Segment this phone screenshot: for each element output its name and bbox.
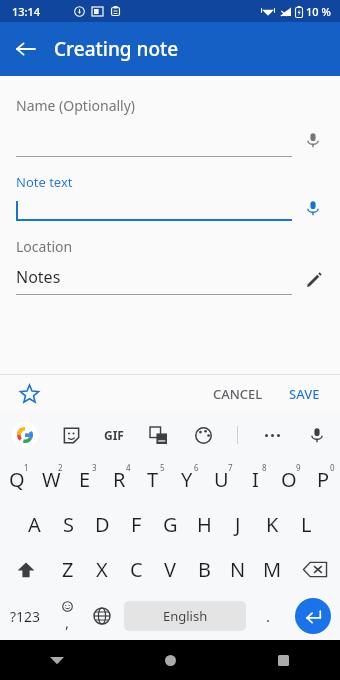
staticText: 4 <box>126 462 131 473</box>
staticText: T <box>147 466 159 493</box>
staticText: Z <box>62 556 74 583</box>
staticText: K <box>266 511 279 538</box>
staticText: CANCEL <box>213 385 263 403</box>
staticText: Y <box>181 466 193 493</box>
staticText: 13:14 <box>12 4 41 19</box>
button[interactable]: CANCEL <box>203 379 273 409</box>
button[interactable]: Home <box>114 640 227 680</box>
staticText: H <box>197 511 212 538</box>
button[interactable]: Backspace <box>289 547 340 592</box>
staticText: V <box>164 556 176 583</box>
button[interactable]: A <box>17 502 51 547</box>
button[interactable]: Voice typing <box>306 424 328 446</box>
button[interactable]: Y <box>170 457 204 502</box>
button[interactable]: Translate <box>147 424 169 446</box>
button[interactable]: Q <box>0 457 34 502</box>
staticText: Notes <box>16 266 61 288</box>
button[interactable]: Voice input for note <box>302 197 324 219</box>
button[interactable]: O <box>272 457 306 502</box>
staticText: W <box>42 466 61 493</box>
staticText: Name (Optionally) <box>16 96 136 115</box>
button[interactable]: W <box>34 457 68 502</box>
staticText: C <box>130 556 143 583</box>
button[interactable]: N <box>221 547 255 592</box>
staticText: Q <box>9 466 25 493</box>
staticText: English <box>163 607 208 625</box>
staticText: D <box>95 511 110 538</box>
staticText: Note text <box>16 173 73 191</box>
button[interactable]: Back <box>0 640 114 680</box>
button[interactable]: P <box>306 457 340 502</box>
button[interactable]: More options <box>261 424 283 446</box>
staticText: A <box>28 511 41 538</box>
button[interactable]: Z <box>51 547 85 592</box>
staticText: 8 <box>262 462 267 473</box>
staticText: 10 % <box>306 4 331 19</box>
button[interactable]: Enter <box>295 598 331 634</box>
staticText: G <box>163 511 178 538</box>
button[interactable]: T <box>136 457 170 502</box>
button[interactable]: C <box>119 547 153 592</box>
staticText: 7 <box>228 462 233 473</box>
button[interactable]: Voice input for name <box>302 129 324 151</box>
button[interactable]: ?123 <box>0 592 50 640</box>
button[interactable]: SAVE <box>283 379 326 409</box>
button[interactable]: V <box>153 547 187 592</box>
button[interactable]: U <box>204 457 238 502</box>
staticText: F <box>131 511 142 538</box>
staticText: O <box>281 466 297 493</box>
staticText: GIF <box>104 427 124 443</box>
staticText: I <box>252 466 259 493</box>
staticText: 5 <box>160 462 165 473</box>
staticText: P <box>317 466 330 493</box>
staticText: 0 <box>330 462 335 473</box>
button[interactable]: Back <box>6 29 46 69</box>
button[interactable]: Shift <box>0 547 51 592</box>
staticText: R <box>113 466 126 493</box>
button[interactable]: J <box>221 502 255 547</box>
button[interactable]: Recent apps <box>227 640 340 680</box>
button[interactable]: Stickers <box>60 424 82 446</box>
staticText: 2 <box>58 462 63 473</box>
button[interactable]: . <box>250 592 286 640</box>
staticText: J <box>235 511 241 538</box>
button[interactable]: M <box>255 547 289 592</box>
staticText: 6 <box>194 462 199 473</box>
button[interactable]: H <box>187 502 221 547</box>
button[interactable]: Edit location <box>302 269 324 291</box>
staticText: S <box>63 511 74 538</box>
staticText: 3 <box>92 462 97 473</box>
button[interactable]: K <box>255 502 289 547</box>
button[interactable]: R <box>102 457 136 502</box>
button[interactable]: Google search <box>12 422 38 448</box>
staticText: X <box>96 556 108 583</box>
button[interactable]: B <box>187 547 221 592</box>
button[interactable]: Emoji and comma <box>50 592 84 640</box>
staticText: Creating note <box>54 36 179 62</box>
button[interactable]: Favorite <box>14 379 44 409</box>
staticText: E <box>79 466 91 493</box>
staticText: N <box>230 556 246 583</box>
button[interactable]: G <box>153 502 187 547</box>
staticText: 1 <box>24 462 29 473</box>
button[interactable]: L <box>289 502 323 547</box>
button[interactable]: E <box>68 457 102 502</box>
button[interactable]: Switch language <box>84 592 120 640</box>
button[interactable]: D <box>85 502 119 547</box>
button[interactable]: I <box>238 457 272 502</box>
staticText: U <box>214 466 229 493</box>
staticText: ?123 <box>10 607 41 626</box>
staticText: . <box>266 606 271 626</box>
staticText: L <box>301 511 312 538</box>
button[interactable]: English <box>124 601 246 631</box>
button[interactable]: X <box>85 547 119 592</box>
staticText: SAVE <box>289 385 320 403</box>
button[interactable]: S <box>51 502 85 547</box>
staticText: B <box>198 556 211 583</box>
staticText: M <box>263 556 282 583</box>
staticText: Location <box>16 237 73 256</box>
staticText: 9 <box>296 462 301 473</box>
button[interactable]: F <box>119 502 153 547</box>
button[interactable]: GIF <box>104 427 124 443</box>
button[interactable]: Themes <box>192 424 214 446</box>
